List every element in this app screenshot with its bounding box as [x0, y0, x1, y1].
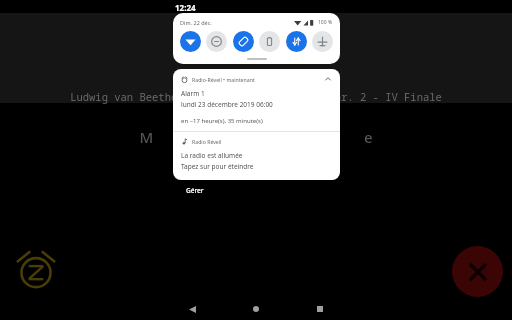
button[interactable]: Radio Réveil	[173, 132, 340, 180]
button[interactable]: Airplane mode	[312, 31, 333, 52]
button[interactable]: Radio-Réveil • maintenant	[173, 69, 340, 131]
button[interactable]: Back	[174, 298, 210, 320]
button[interactable]: Snooze alarm	[10, 244, 62, 296]
button[interactable]: Recent apps	[302, 298, 338, 320]
staticText: Tapez sur pour éteindre	[181, 162, 254, 171]
button[interactable]: Do not disturb	[206, 31, 227, 52]
staticText: Alarm 1	[181, 89, 205, 98]
staticText: Dim. 22 déc.	[180, 19, 212, 26]
staticText: en ~17 heure(s), 35 minute(s)	[181, 117, 263, 125]
button[interactable]: Auto-rotate	[233, 31, 254, 52]
staticText: La radio est allumée	[181, 151, 243, 160]
button[interactable]: Dismiss alarm	[452, 246, 503, 297]
button[interactable]: Home	[238, 298, 274, 320]
staticText: 100 %	[318, 19, 333, 26]
staticText: Gérer	[186, 186, 204, 195]
staticText: M e	[0, 127, 512, 147]
button[interactable]: Gérer	[186, 186, 204, 195]
button[interactable]: Battery saver	[259, 31, 280, 52]
staticText: 12:24	[175, 2, 196, 13]
staticText: lundi 23 décembre 2019 06:00	[181, 100, 273, 109]
staticText: Radio-Réveil • maintenant	[192, 76, 255, 83]
staticText: Ludwig van Beethoven / ... op. 1 nr. 2 -…	[0, 90, 512, 104]
button[interactable]: Wi-Fi	[180, 31, 201, 52]
staticText: Radio Réveil	[192, 138, 222, 145]
button[interactable]: Mobile data	[286, 31, 307, 52]
